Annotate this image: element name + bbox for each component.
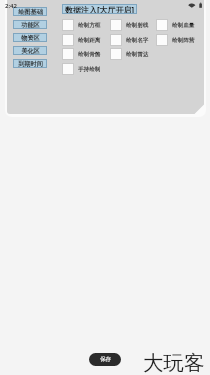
staticText: 绘图基础 (18, 8, 43, 16)
button[interactable]: 绘制方框 (62, 19, 108, 31)
staticText: 绘制阵营 (172, 37, 195, 44)
button[interactable]: 绘制名字 (110, 34, 154, 46)
staticText: 2:42 (5, 2, 17, 10)
staticText: 绘制距离 (78, 37, 101, 44)
staticText: 大玩客 (143, 350, 205, 375)
staticText: 绘制方框 (78, 22, 101, 29)
button[interactable]: 手持绘制 (62, 63, 108, 75)
button[interactable]: 美化区 (13, 46, 47, 55)
button[interactable]: 保存 (89, 353, 121, 366)
staticText: 绘制射线 (126, 22, 149, 29)
staticText: 到期时间 (18, 60, 43, 68)
button[interactable]: 绘图基础 (13, 7, 47, 16)
staticText: 手持绘制 (78, 66, 101, 73)
button[interactable]: 绘制射线 (110, 19, 154, 31)
staticText: 绘制名字 (126, 37, 149, 44)
staticText: 绘制骨骼 (78, 51, 101, 58)
button[interactable]: 绘制距离 (62, 34, 108, 46)
button[interactable]: 绘制阵营 (156, 34, 200, 46)
staticText: 数据注入[大厅开启] (65, 4, 135, 14)
staticText: 绘制雷达 (126, 51, 149, 58)
button[interactable]: 绘制骨骼 (62, 48, 108, 60)
staticText: 绘制血量 (172, 22, 195, 29)
staticText: 功能区 (21, 21, 40, 29)
button[interactable]: 功能区 (13, 20, 47, 29)
button[interactable]: 到期时间 (13, 59, 47, 68)
staticText: 保存 (100, 356, 111, 363)
button[interactable]: 绘制血量 (156, 19, 200, 31)
button[interactable]: 数据注入[大厅开启] (62, 4, 137, 14)
button[interactable]: 物资区 (13, 33, 47, 42)
button[interactable]: 绘制雷达 (110, 48, 154, 60)
staticText: 物资区 (21, 34, 40, 42)
other: Status icons (188, 1, 204, 10)
staticText: 美化区 (21, 47, 40, 55)
